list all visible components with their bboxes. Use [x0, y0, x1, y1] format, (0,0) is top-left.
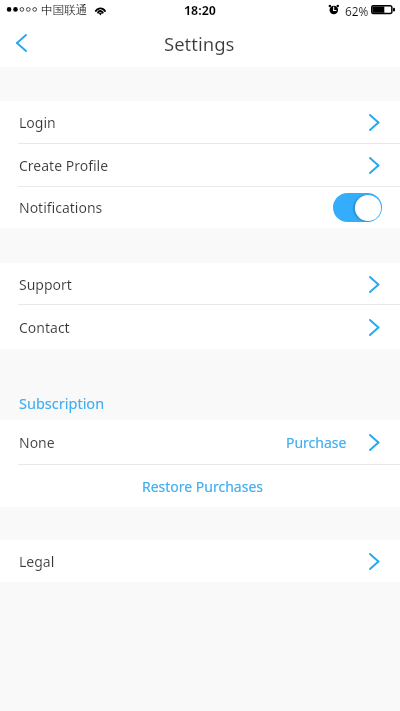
staticText: Restore Purchases — [142, 477, 264, 496]
button[interactable]: Notifications — [333, 193, 382, 222]
staticText: Settings — [164, 31, 235, 56]
button[interactable]: Restore Purchases — [0, 465, 400, 507]
button[interactable]: Contact — [0, 305, 400, 349]
button[interactable]: Create Profile — [0, 144, 400, 187]
staticText: Create Profile — [19, 156, 109, 175]
button[interactable]: Back — [0, 22, 42, 67]
staticText: None — [19, 433, 55, 452]
button[interactable]: Notifications — [0, 187, 400, 228]
staticText: 中国联通 — [41, 3, 88, 18]
staticText: Subscription — [19, 393, 105, 413]
staticText: 18:20 — [184, 2, 216, 19]
button[interactable]: Login — [0, 101, 400, 144]
staticText: Legal — [19, 552, 55, 571]
button[interactable]: Support — [0, 263, 400, 305]
staticText: Login — [19, 113, 56, 132]
staticText: Contact — [19, 318, 70, 337]
staticText: Notifications — [19, 198, 103, 217]
button[interactable]: Legal — [0, 540, 400, 582]
staticText: Purchase — [286, 433, 347, 452]
staticText: Support — [19, 275, 72, 294]
button[interactable]: None — [0, 420, 400, 465]
staticText: 62% — [345, 3, 369, 19]
